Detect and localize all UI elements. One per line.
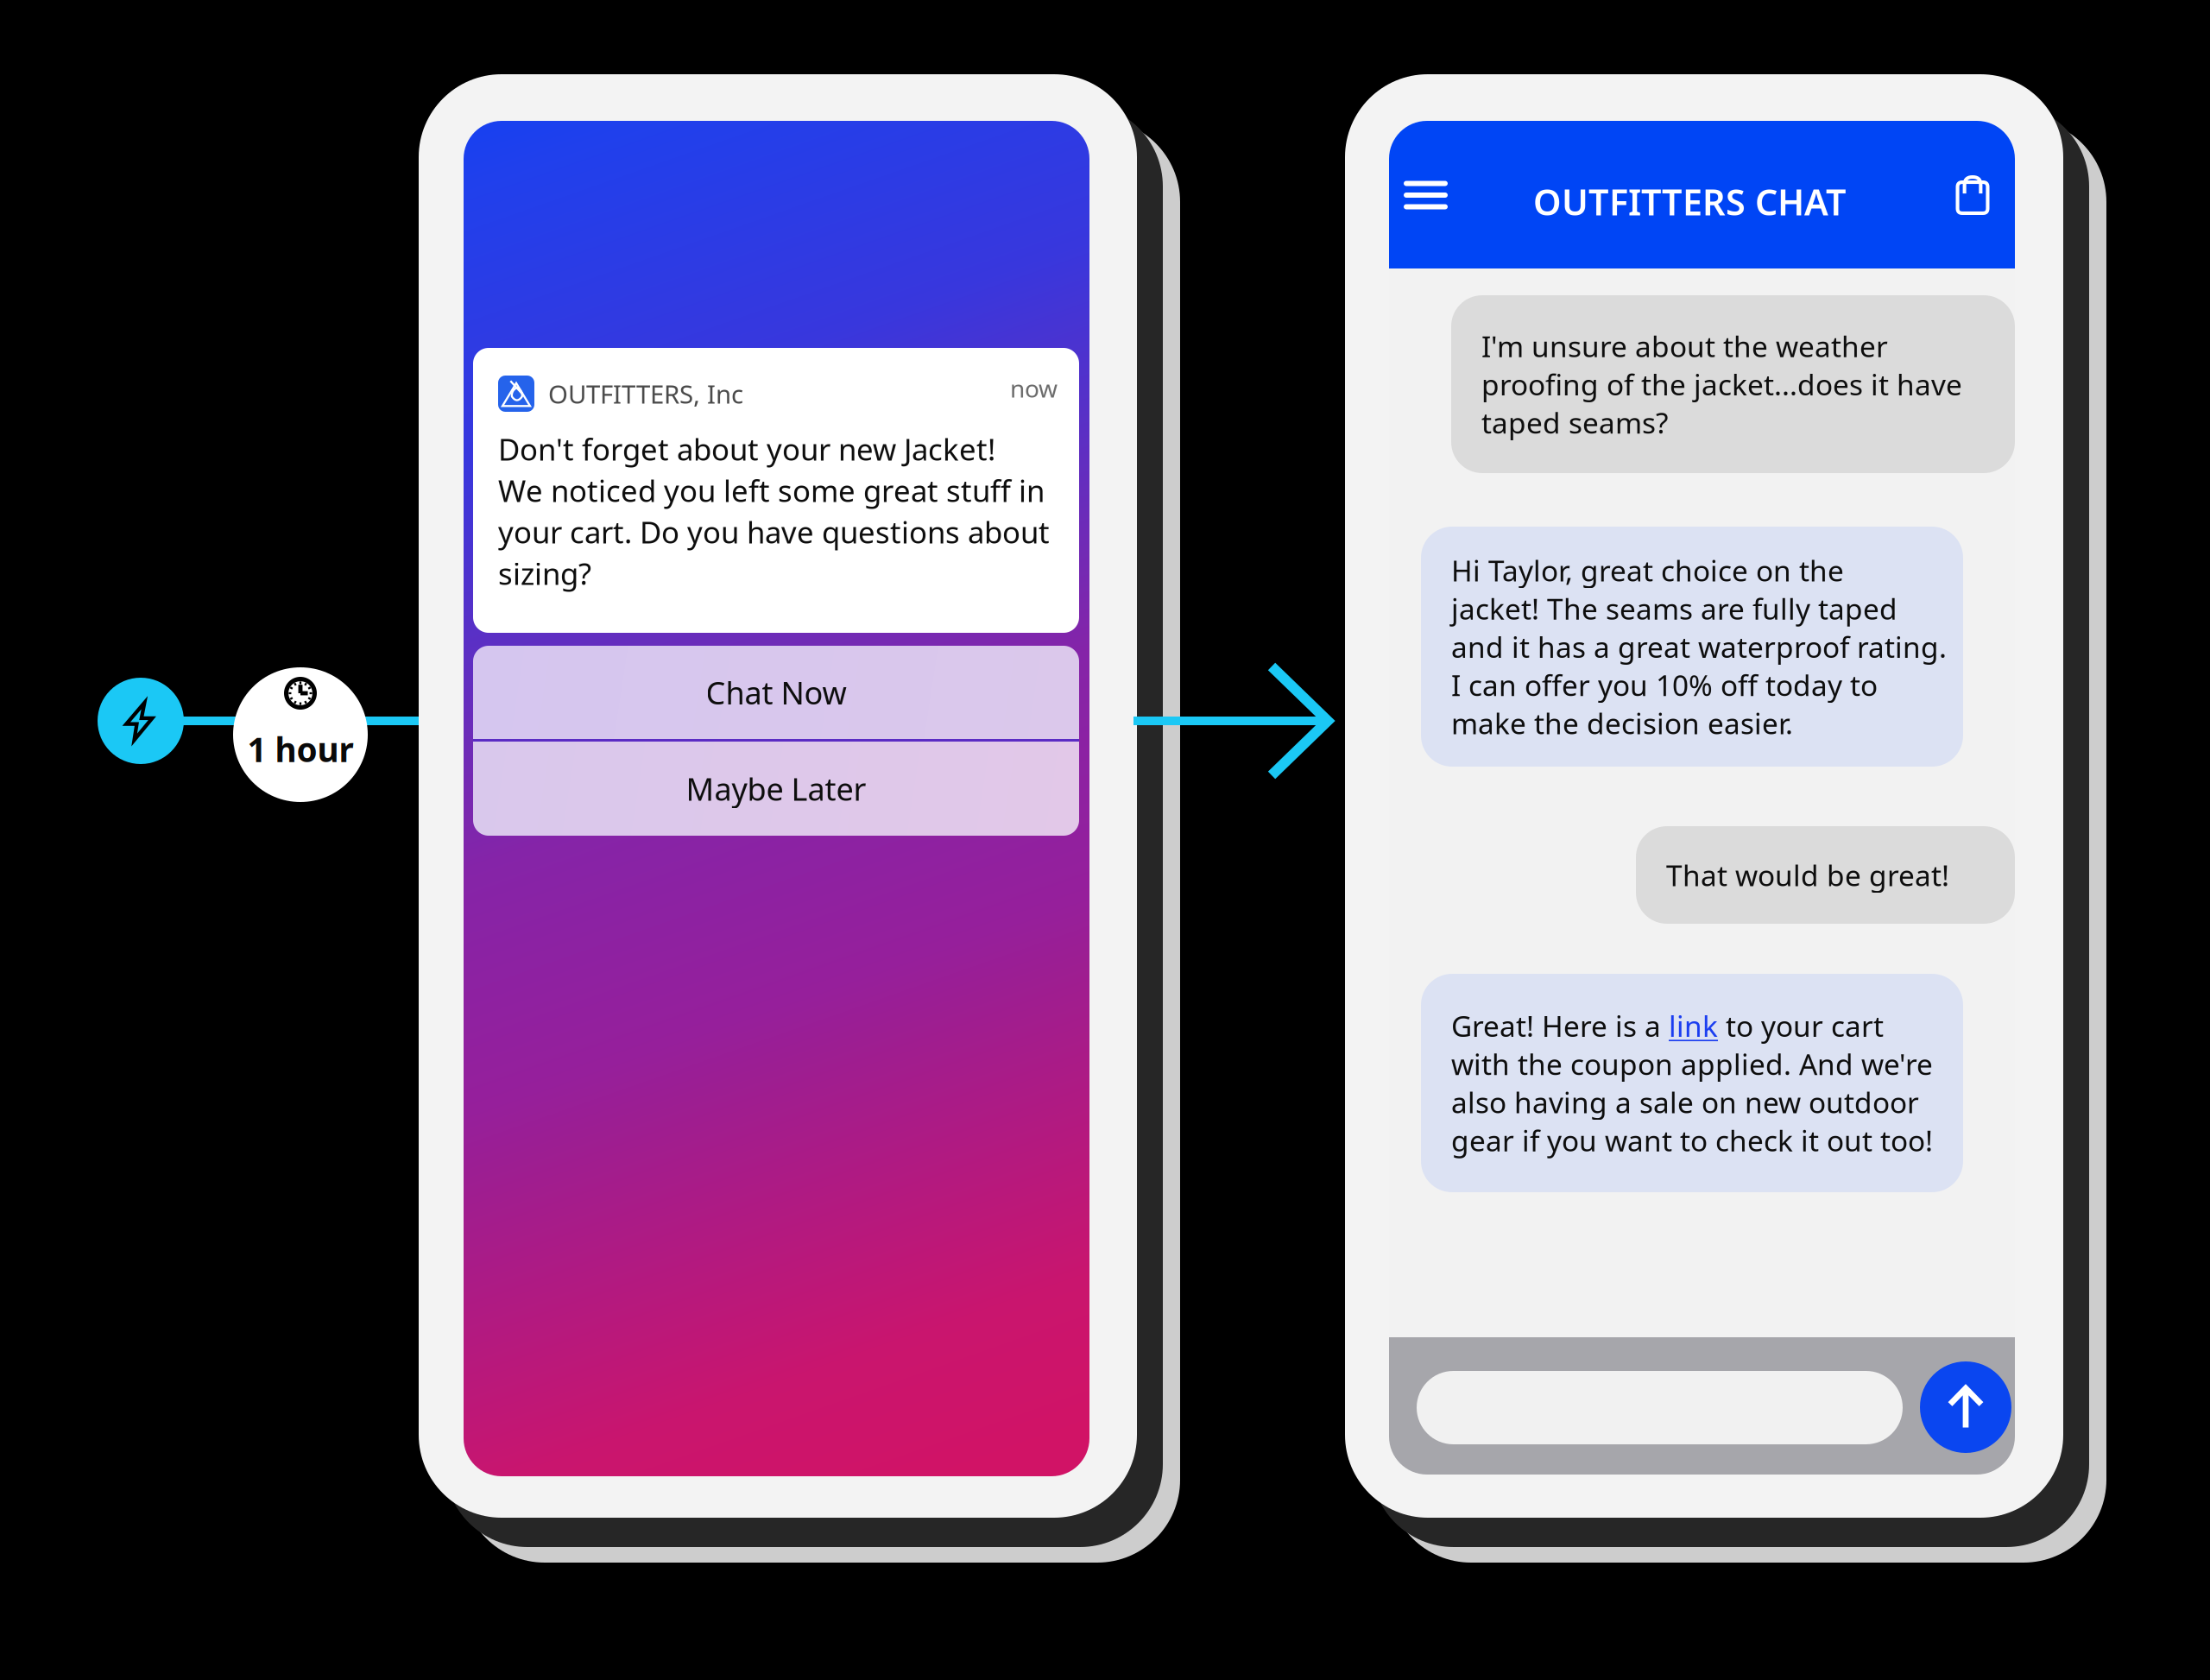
staticText: 1 hour xyxy=(247,727,354,771)
staticText: Great! Here is a xyxy=(1451,1007,1669,1045)
staticText: link xyxy=(1669,1007,1718,1045)
staticText: I'm unsure about the weather proofing of… xyxy=(1481,327,1962,441)
staticText: Chat Now xyxy=(706,672,846,713)
staticText: now xyxy=(1010,372,1058,404)
button[interactable]: Menu xyxy=(1389,167,1462,224)
button[interactable]: Shopping cart xyxy=(1938,167,2007,224)
button[interactable]: Maybe Later xyxy=(473,742,1079,836)
staticText: That would be great! xyxy=(1666,856,1949,894)
staticText: to your cart xyxy=(1718,1007,1884,1045)
staticText: OUTFITTERS, Inc xyxy=(548,377,743,411)
staticText: Hi Taylor, great choice on the jacket! T… xyxy=(1451,551,1947,742)
staticText: Maybe Later xyxy=(686,768,866,809)
staticText: OUTFITTERS CHAT xyxy=(1533,178,1847,225)
staticText: Don't forget about your new Jacket! We n… xyxy=(498,429,1050,593)
button[interactable]: Send message xyxy=(1920,1361,2011,1453)
staticText: with the coupon applied. And we're also … xyxy=(1451,1045,1933,1159)
button[interactable]: Chat Now xyxy=(473,646,1079,739)
